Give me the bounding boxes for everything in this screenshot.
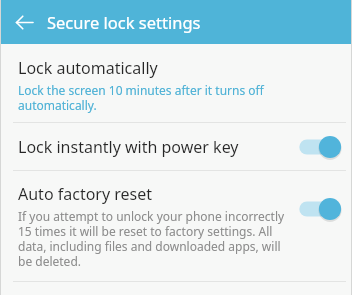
button[interactable]: Lock instantly with power key	[1, 123, 351, 170]
staticText: Lock the screen 10 minutes after it turn…	[18, 82, 335, 113]
button[interactable]: Lock automatically	[1, 44, 351, 122]
button[interactable]: Navigate up	[9, 7, 39, 37]
staticText: Auto factory reset	[18, 183, 153, 205]
staticText: Lock automatically	[18, 57, 158, 79]
staticText: Secure lock settings	[47, 11, 201, 33]
staticText: Lock instantly with power key	[18, 136, 239, 158]
button[interactable]: Setting enabled, toggle off	[295, 194, 343, 224]
staticText: If you attempt to unlock your phone inco…	[18, 208, 287, 269]
button[interactable]: Auto factory reset	[1, 171, 351, 278]
button[interactable]: Setting enabled, toggle off	[295, 132, 343, 162]
